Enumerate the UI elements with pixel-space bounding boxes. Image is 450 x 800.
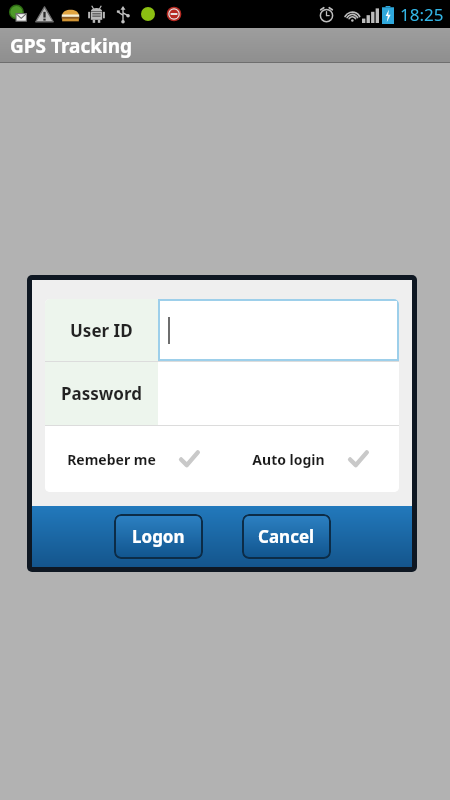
staticText: 18:25 [400, 3, 444, 26]
button[interactable]: Remeber me [45, 426, 222, 492]
button[interactable]: User ID [45, 299, 399, 361]
staticText: GPS Tracking [10, 33, 133, 59]
staticText: Password [61, 382, 142, 405]
staticText: Logon [132, 525, 185, 548]
other: Auto login [347, 448, 369, 470]
button[interactable]: Auto login [222, 426, 399, 492]
button[interactable]: Cancel [242, 514, 331, 559]
button[interactable]: Password [45, 362, 399, 425]
staticText: Auto login [252, 450, 325, 469]
other: Remeber me [178, 448, 200, 470]
button[interactable]: Logon [114, 514, 203, 559]
staticText: User ID [70, 319, 133, 342]
staticText: Cancel [258, 525, 315, 548]
staticText: Remeber me [67, 450, 156, 469]
